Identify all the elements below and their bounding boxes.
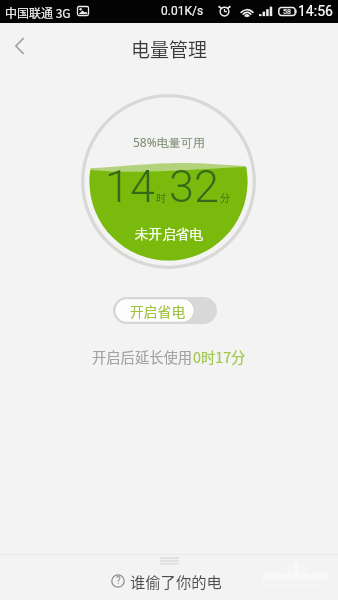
staticText: 0时17分 — [193, 346, 246, 367]
staticText: 32 — [169, 160, 219, 213]
button[interactable]: Back — [0, 25, 40, 67]
staticText: 分 — [220, 190, 230, 204]
staticText: 14:56 — [298, 3, 333, 19]
staticText: 电量管理 — [131, 35, 208, 63]
staticText: 0.01K/s — [161, 4, 204, 18]
staticText: 14 — [105, 160, 155, 213]
staticText: 谁偷了你的电 — [130, 570, 222, 592]
staticText: 开启省电 — [130, 301, 186, 321]
staticText: 未开启省电 — [135, 226, 203, 243]
button[interactable]: 开启省电 — [113, 297, 217, 324]
staticText: 58%电量可用 — [133, 134, 205, 150]
staticText: 开启后延长使用 — [92, 346, 193, 367]
staticText: 时 — [156, 190, 166, 204]
staticText: 中国联通 3G — [5, 4, 71, 21]
staticText: 58 — [283, 8, 291, 16]
button[interactable]: ? — [111, 570, 222, 592]
staticText: ? — [116, 575, 121, 587]
